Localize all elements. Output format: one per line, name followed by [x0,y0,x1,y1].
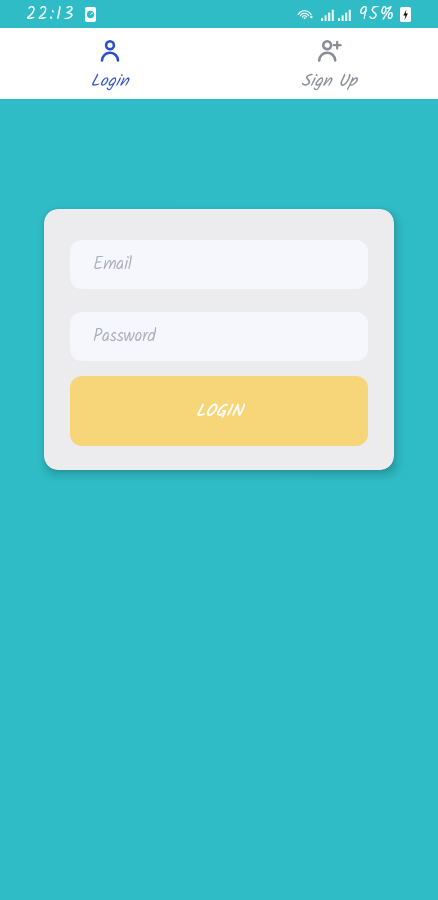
button[interactable]: Sign Up [219,28,438,99]
button[interactable]: Password [70,312,368,361]
staticText: Email [93,251,132,278]
staticText: Password [93,323,156,350]
staticText: Login [90,68,129,95]
staticText: Sign Up [301,68,357,95]
button[interactable]: LOGIN [70,376,368,446]
staticText: 95% [359,1,396,28]
button[interactable]: Login [0,28,219,99]
staticText: 22:13 [26,1,76,28]
staticText: LOGIN [196,398,243,425]
button[interactable]: Email [70,240,368,289]
